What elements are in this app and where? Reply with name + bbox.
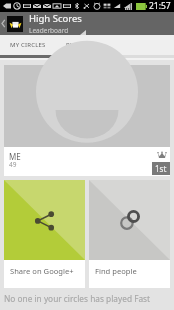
staticText: Leaderboard <box>29 26 69 35</box>
button[interactable]: MY CIRCLES <box>0 35 56 55</box>
staticText: 49 <box>9 160 17 169</box>
button[interactable]: PUBLIC <box>56 35 99 55</box>
staticText: No one in your circles has played Fast <box>4 293 151 304</box>
staticText: Share on Google+ <box>10 266 74 276</box>
staticText: Find people <box>95 266 137 276</box>
staticText: MY CIRCLES <box>10 41 46 49</box>
button[interactable]: Find people <box>89 180 170 288</box>
button[interactable]: ME <box>4 65 170 176</box>
button[interactable]: Share on Google+ <box>4 180 85 288</box>
staticText: PUBLIC <box>66 41 89 49</box>
staticText: ME <box>9 151 21 162</box>
other: Navigate up <box>1 19 6 28</box>
staticText: 1st <box>155 163 167 174</box>
staticText: High Scores <box>29 12 82 25</box>
staticText: 21:57 <box>149 0 171 12</box>
